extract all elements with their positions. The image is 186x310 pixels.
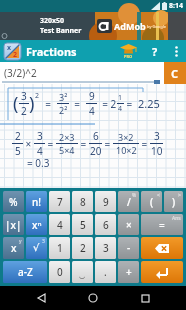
staticText: Fractions (26, 44, 77, 59)
staticText: 8:14 (169, 1, 183, 11)
staticText: = (124, 97, 138, 111)
button[interactable]: n! (26, 191, 47, 212)
staticText: 4 (57, 218, 63, 232)
button[interactable]: 1 (49, 237, 70, 259)
staticText: 3 (37, 129, 43, 143)
staticText: ) (172, 195, 176, 209)
staticText: 3 (154, 129, 160, 143)
button[interactable]: . (95, 261, 116, 283)
staticText: √ (33, 242, 40, 254)
staticText: ) (29, 91, 35, 116)
button[interactable]: PRO (116, 40, 140, 62)
button[interactable]: / (118, 191, 139, 212)
staticText: % (132, 192, 137, 199)
staticText: = (69, 97, 86, 111)
button[interactable] (141, 261, 183, 283)
button[interactable]: a-Z (3, 261, 47, 283)
staticText: 2 (80, 241, 86, 255)
staticText: % (9, 195, 18, 209)
staticText: 2² (59, 104, 68, 116)
staticText: 10 (151, 144, 163, 158)
staticText: 4 (37, 144, 43, 158)
button[interactable]: 2 (72, 237, 93, 259)
staticText: = (102, 137, 113, 151)
staticText: y (19, 238, 22, 245)
staticText: 5 (15, 144, 21, 158)
staticText: 5 (80, 218, 86, 232)
staticText: AdMob (114, 20, 146, 32)
staticText: = 2 (97, 97, 117, 111)
staticText: x (11, 241, 17, 255)
staticText: < (157, 192, 160, 199)
button[interactable]: = (141, 214, 183, 235)
button[interactable]: % (3, 191, 24, 212)
button[interactable]: |x| (3, 214, 24, 235)
button[interactable]: 320x50 (0, 12, 186, 40)
staticText: (3/2)^2 (4, 66, 37, 80)
staticText: 1 (118, 93, 123, 103)
button[interactable]: 4 (49, 214, 70, 235)
staticText: 8 (80, 195, 86, 209)
staticText: Test Banner (40, 26, 82, 36)
staticText: 10×2 (116, 144, 137, 156)
button[interactable]: x (3, 237, 24, 259)
staticText: by Google (146, 24, 166, 29)
button[interactable] (21, 286, 61, 310)
button[interactable] (125, 286, 165, 310)
button[interactable]: 7 (49, 191, 70, 212)
staticText: × (126, 218, 132, 232)
staticText: 2 (21, 104, 27, 118)
button[interactable]: 6 (95, 214, 116, 235)
button[interactable]: ) (164, 191, 183, 212)
staticText: a-Z (18, 265, 33, 279)
staticText: 3 (21, 89, 27, 103)
button[interactable]: ( (141, 191, 162, 212)
staticText: ( (13, 91, 19, 116)
staticText: 3² (59, 91, 68, 103)
staticText: = (45, 137, 56, 151)
button[interactable]: 5 (72, 214, 93, 235)
button[interactable]: xⁿ (26, 214, 47, 235)
button[interactable]: 9 (95, 191, 116, 212)
button[interactable]: x (4, 43, 21, 60)
staticText: > (178, 192, 181, 199)
staticText: 1 (57, 241, 63, 255)
staticText: 0 (57, 265, 63, 279)
staticText: 2 (13, 50, 18, 60)
button[interactable] (169, 44, 183, 58)
button[interactable]: 0 (49, 261, 70, 283)
button[interactable] (141, 237, 183, 259)
staticText: ( (150, 195, 154, 209)
staticText: 6 (93, 129, 99, 143)
staticText: x (7, 43, 12, 53)
staticText: + (126, 265, 132, 279)
staticText: PRO (124, 54, 133, 59)
staticText: = (78, 137, 89, 151)
button[interactable] (73, 286, 113, 310)
button[interactable]: ‿ (72, 261, 93, 283)
staticText: 320x50 (40, 16, 65, 26)
staticText: |x| (5, 218, 22, 232)
staticText: × (23, 137, 34, 151)
button[interactable]: - (118, 237, 139, 259)
staticText: = 0.3 (27, 156, 50, 170)
button[interactable]: √ (26, 237, 47, 259)
staticText: . (104, 265, 107, 279)
button[interactable]: 8 (72, 191, 93, 212)
staticText: 6 (103, 218, 109, 232)
button[interactable]: C (164, 62, 186, 84)
staticText: ‿ (79, 265, 86, 279)
button[interactable]: 3 (95, 237, 116, 259)
staticText: = (159, 218, 165, 232)
staticText: 7 (57, 195, 63, 209)
staticText: 2 (35, 91, 40, 101)
staticText: 5×4 (59, 144, 75, 156)
button[interactable]: × (118, 214, 139, 235)
staticText: 2×3 (59, 131, 75, 143)
staticText: 3 (42, 238, 45, 245)
button[interactable]: + (118, 261, 139, 283)
button[interactable]: ? (147, 43, 163, 59)
staticText: 4 (118, 104, 123, 114)
staticText: Ans (172, 215, 181, 222)
staticText: 2 (15, 129, 21, 143)
